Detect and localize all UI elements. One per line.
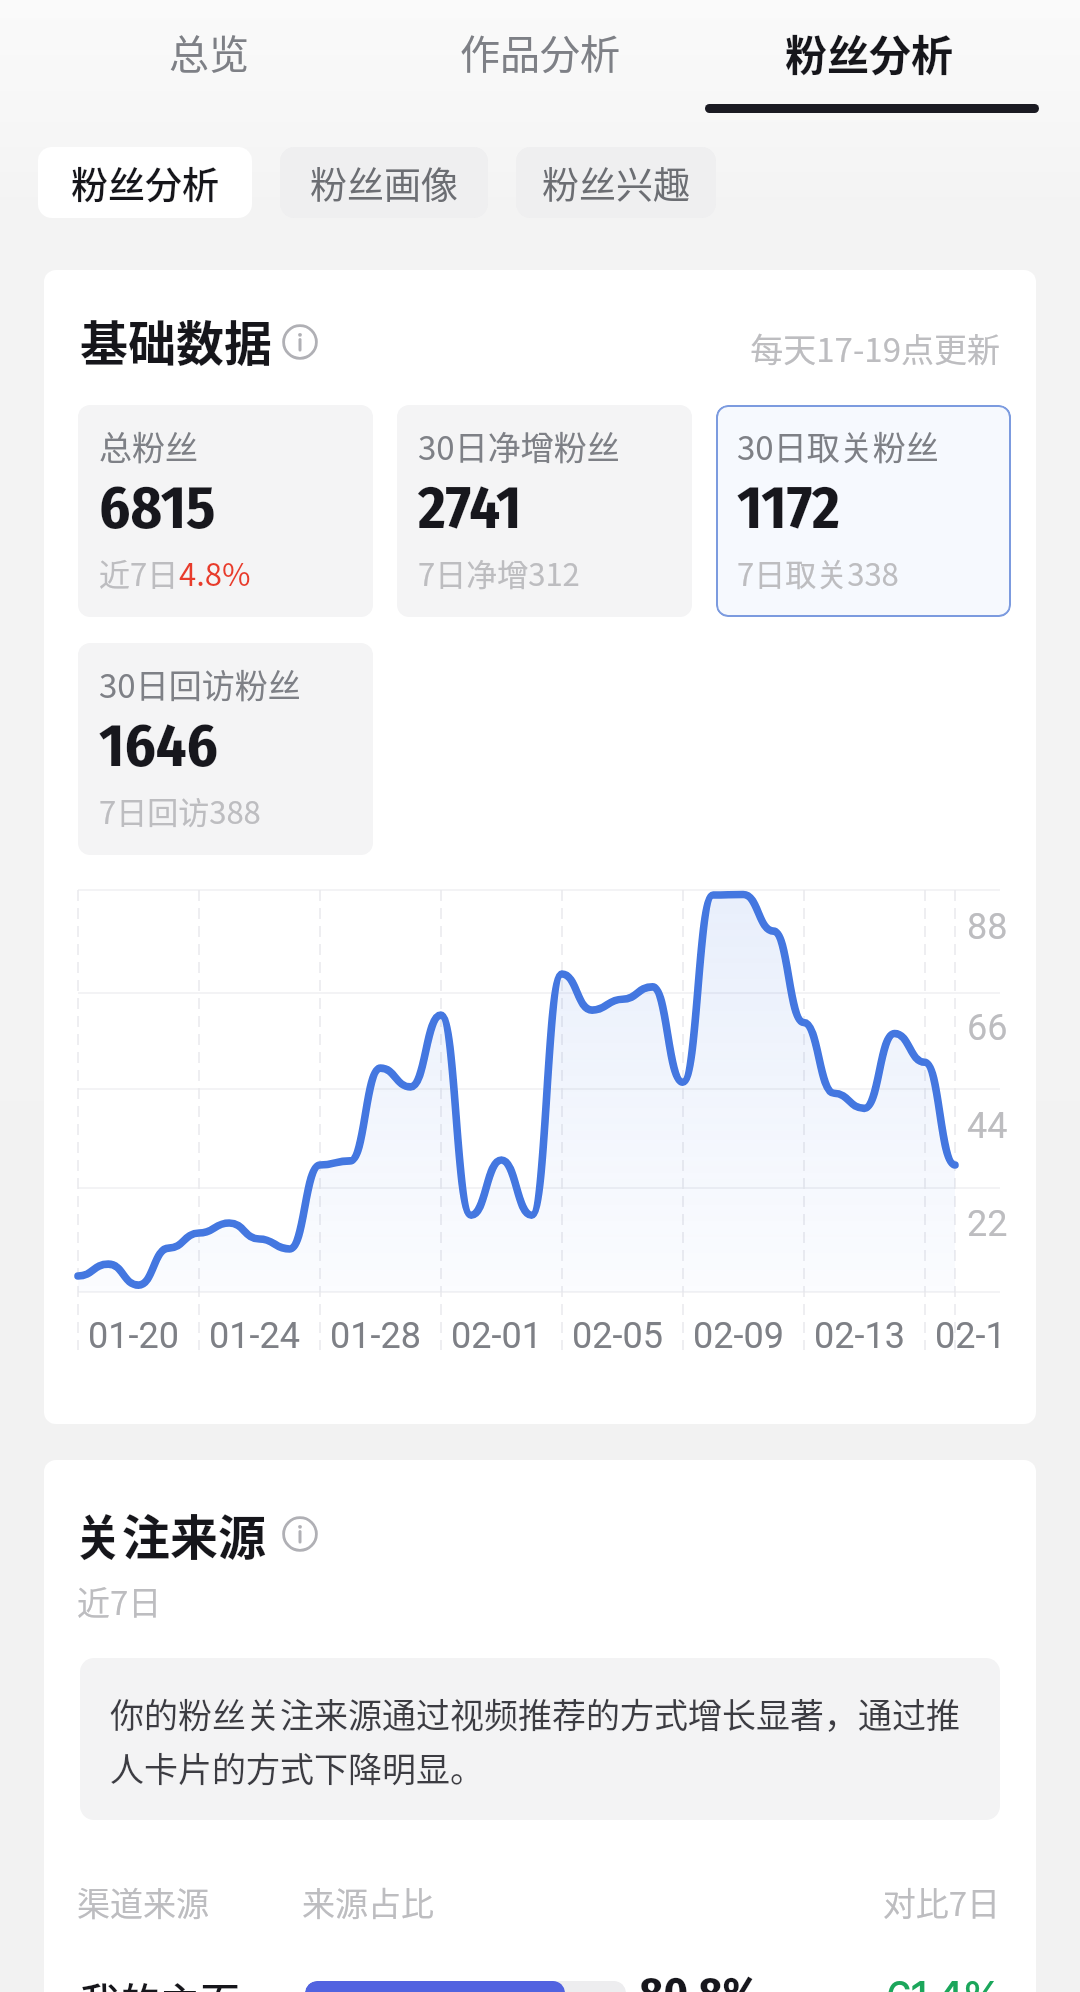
button[interactable]: 作品分析 (420, 0, 660, 124)
button[interactable]: 总粉丝 (78, 405, 373, 617)
staticText: 01-24 (209, 1315, 300, 1357)
staticText: 粉丝画像 (310, 156, 458, 210)
staticText: 近7日 (77, 1577, 162, 1625)
button[interactable]: 我的主页 (80, 1958, 1000, 1992)
staticText: 总览 (169, 23, 249, 81)
staticText: 02-09 (693, 1315, 784, 1357)
staticText: 30日取关粉丝 (737, 422, 939, 470)
staticText: 来源占比 (302, 1878, 434, 1926)
staticText: 01-20 (88, 1315, 179, 1357)
staticText: 30日净增粉丝 (418, 422, 620, 470)
staticText: 02-05 (572, 1315, 663, 1357)
staticText: 关注来源 (74, 1499, 267, 1569)
staticText: 粉丝分析 (71, 156, 219, 210)
staticText: 02-13 (814, 1315, 905, 1357)
button[interactable]: 30日取关粉丝 (716, 405, 1011, 617)
staticText: 80.8% (639, 1966, 759, 1992)
staticText: 7日回访388 (99, 788, 261, 833)
staticText: 02-01 (451, 1315, 542, 1357)
other: Info (282, 324, 318, 360)
staticText: 44 (967, 1105, 1008, 1147)
staticText: 渠道来源 (77, 1878, 209, 1926)
button[interactable]: 粉丝分析 (38, 147, 252, 218)
staticText: 2741 (418, 472, 522, 544)
staticText: 88 (967, 906, 1008, 948)
button[interactable]: 总览 (89, 0, 329, 124)
staticText: 每天17-19点更新 (80, 324, 1000, 372)
staticText: 66 (967, 1007, 1008, 1049)
button[interactable]: 30日净增粉丝 (397, 405, 692, 617)
staticText: 作品分析 (460, 23, 620, 81)
staticText: 粉丝分析 (785, 22, 954, 83)
staticText: 总粉丝 (99, 422, 198, 470)
staticText: 1646 (99, 710, 218, 782)
staticText: 基础数据 (80, 305, 273, 375)
staticText: 4.8% (179, 550, 251, 595)
staticText: 7日净增312 (418, 550, 580, 595)
staticText: 我的主页 (80, 1971, 240, 1992)
staticText: 30日回访粉丝 (99, 660, 301, 708)
staticText: 02-1 (935, 1315, 1006, 1357)
other: Info (282, 1516, 318, 1552)
staticText: 22 (967, 1203, 1008, 1245)
staticText: 6815 (99, 472, 216, 544)
staticText: 对比7日 (80, 1878, 1000, 1926)
staticText: 近7日 (99, 550, 179, 595)
staticText: 你的粉丝关注来源通过视频推荐的方式增长显著，通过推人卡片的方式下降明显。 (110, 1689, 974, 1792)
staticText: 01-28 (330, 1315, 421, 1357)
staticText: 7日取关338 (737, 550, 899, 595)
staticText: 61.4% (80, 1971, 1000, 1992)
staticText: 1172 (737, 472, 840, 544)
button[interactable]: 粉丝兴趣 (516, 147, 716, 218)
button[interactable]: 粉丝画像 (280, 147, 488, 218)
staticText: 粉丝兴趣 (542, 156, 690, 210)
button[interactable]: 30日回访粉丝 (78, 643, 373, 855)
button[interactable]: 粉丝分析 (749, 0, 989, 124)
